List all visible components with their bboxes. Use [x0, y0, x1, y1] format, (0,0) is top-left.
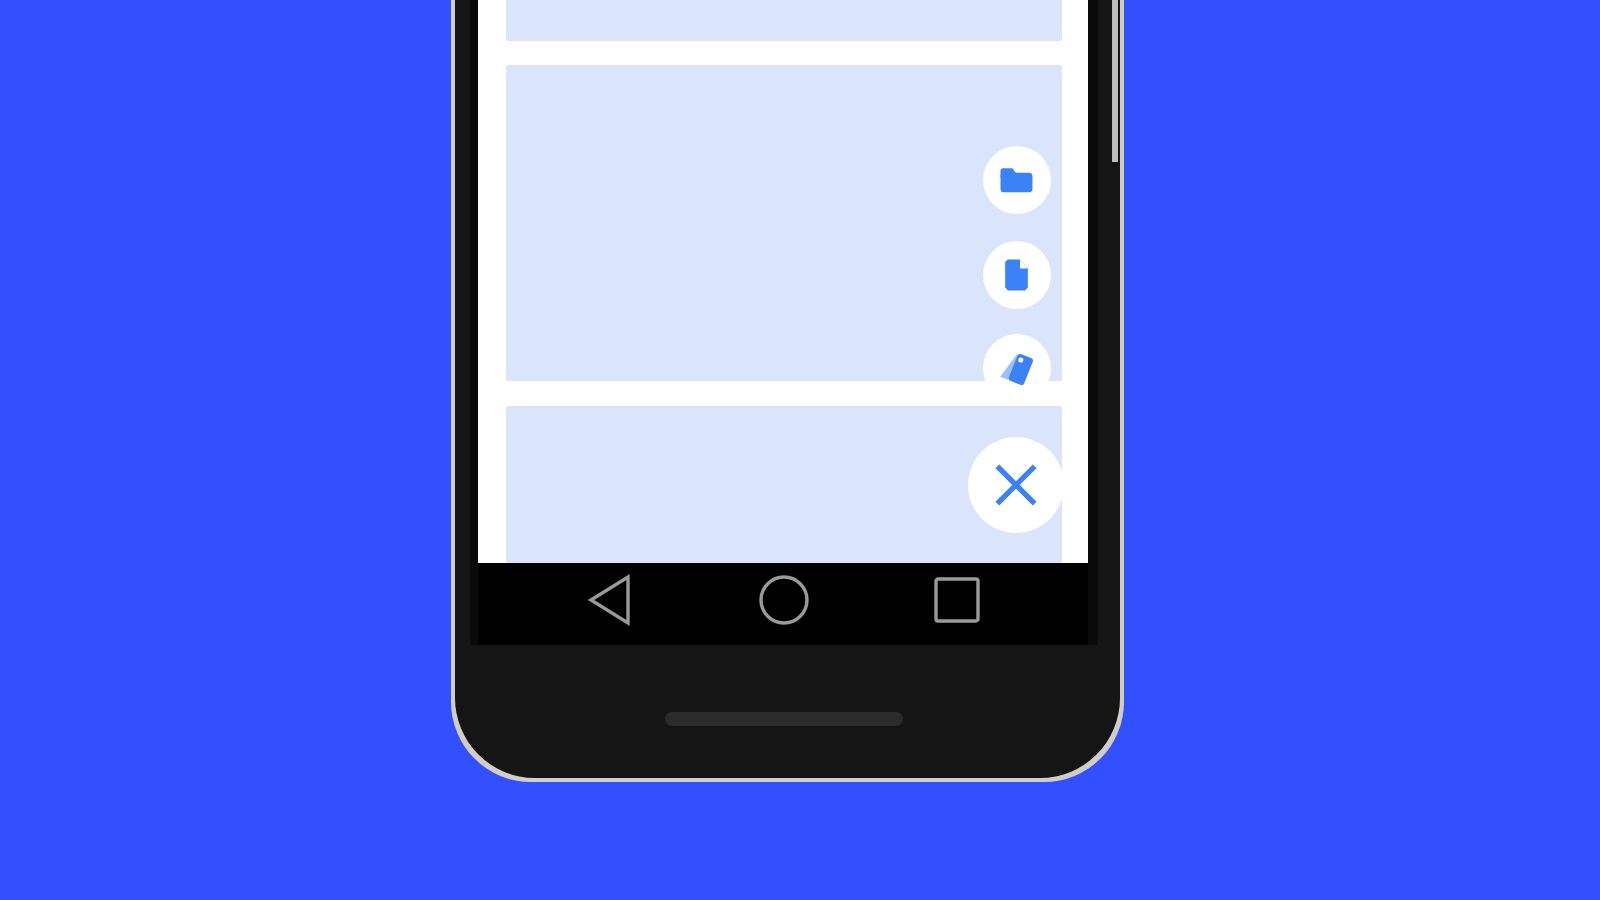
button[interactable]: Close	[968, 437, 1064, 533]
button[interactable]: New folder	[983, 146, 1051, 214]
button[interactable]: Change style	[983, 334, 1051, 402]
button[interactable]: New document	[983, 241, 1051, 309]
